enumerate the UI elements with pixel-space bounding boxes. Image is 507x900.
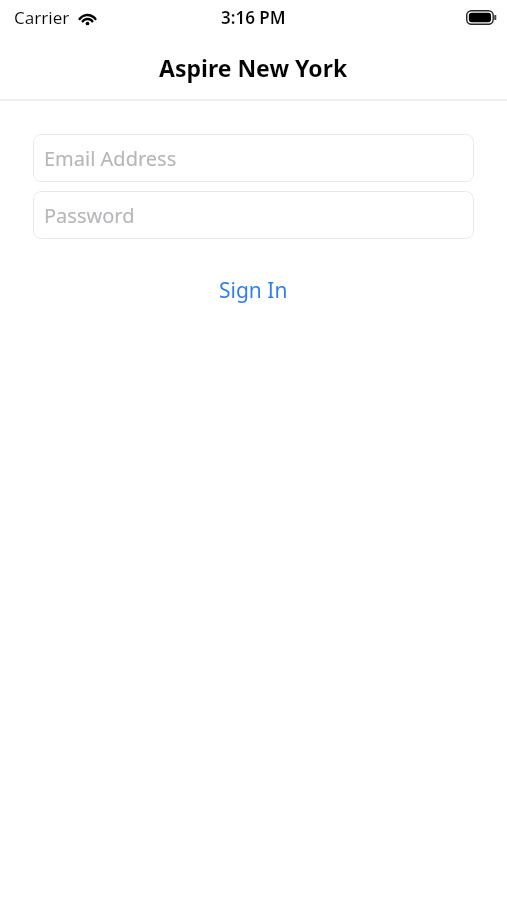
other: Wi-Fi signal [77,10,98,26]
button[interactable]: Sign In [203,272,304,309]
staticText: Sign In [219,276,288,305]
staticText: Password [44,202,135,229]
staticText: Aspire New York [159,52,348,83]
staticText: Email Address [44,145,177,172]
staticText: 3:16 PM [221,6,286,29]
other: Battery full [466,10,497,25]
staticText: Carrier [14,6,70,29]
button[interactable]: Email Address [33,134,474,182]
button[interactable]: Password [33,191,474,239]
